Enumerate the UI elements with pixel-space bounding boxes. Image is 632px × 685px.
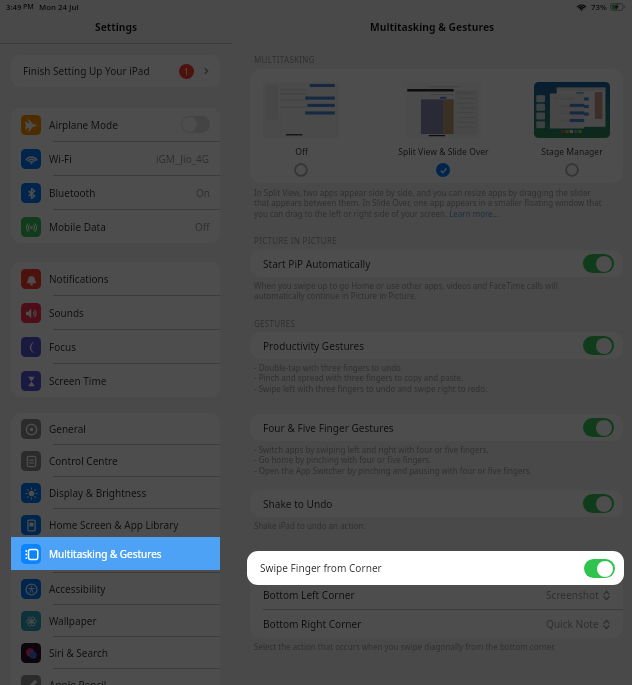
staticText: Control Centre — [49, 454, 118, 468]
staticText: Stage Manager — [541, 146, 603, 158]
staticText: Sounds — [49, 306, 84, 320]
staticText: 1 — [184, 66, 189, 77]
staticText: MULTITASKING — [254, 54, 315, 65]
button[interactable]: Focus — [11, 330, 220, 363]
button[interactable]: Home Screen & App Library — [11, 509, 220, 540]
button[interactable]: Split View & Slide Over — [380, 82, 506, 177]
button[interactable]: Display & Brightness — [11, 477, 220, 508]
staticText: Settings — [95, 20, 138, 34]
other: Wi-Fi — [576, 3, 587, 11]
staticText: Display & Brightness — [49, 486, 147, 500]
button[interactable]: Wi-Fi — [11, 142, 220, 175]
button[interactable]: Wallpaper — [11, 605, 220, 636]
button[interactable]: Shake to Undo — [250, 490, 623, 517]
staticText: - Double-tap with three fingers to undo.… — [254, 362, 488, 395]
button[interactable] — [583, 494, 614, 513]
button[interactable]: Airplane Mode — [11, 108, 220, 141]
button[interactable] — [583, 418, 614, 437]
staticText: Shake to Undo — [263, 497, 333, 511]
button[interactable] — [583, 556, 614, 575]
staticText: Multitasking & Gestures — [49, 547, 162, 561]
staticText: PM — [23, 2, 34, 12]
button[interactable]: Mobile Data — [11, 210, 220, 243]
staticText: Swipe Finger from Corner — [260, 561, 382, 575]
button[interactable]: Productivity Gestures — [250, 332, 623, 359]
button[interactable] — [583, 336, 614, 355]
staticText: Mobile Data — [49, 220, 106, 234]
staticText: - Switch apps by swiping left and right … — [254, 444, 532, 477]
button[interactable]: Multitasking & Gestures — [11, 537, 220, 570]
staticText: Shake iPad to undo an action. — [254, 520, 366, 531]
button[interactable]: Sounds — [11, 296, 220, 329]
staticText: Screenshot — [546, 588, 599, 602]
staticText: PICTURE IN PICTURE — [254, 235, 338, 246]
staticText: Siri & Search — [49, 646, 108, 660]
staticText: Select the action that occurs when you s… — [254, 641, 556, 652]
button[interactable]: Bottom Right Corner — [250, 610, 623, 638]
button[interactable]: Start PiP Automatically — [250, 250, 623, 277]
button[interactable]: Apple Pencil — [11, 669, 220, 685]
staticText: Off — [195, 220, 210, 234]
staticText: Wallpaper — [49, 614, 97, 628]
staticText: Four & Five Finger Gestures — [263, 421, 394, 435]
staticText: In Split View, two apps appear side by s… — [254, 187, 608, 220]
staticText: Finish Setting Up Your iPad — [23, 64, 150, 78]
staticText: Swipe Finger from Corner — [263, 559, 385, 573]
staticText: Productivity Gestures — [263, 339, 365, 353]
button[interactable]: Accessibility — [11, 573, 220, 604]
staticText: Bluetooth — [49, 186, 96, 200]
button[interactable]: Bottom Left Corner — [250, 581, 623, 609]
button[interactable]: Four & Five Finger Gestures — [250, 414, 623, 441]
staticText: General — [49, 422, 86, 436]
other: Battery 73% charging — [610, 3, 626, 11]
button[interactable]: Multitasking & Gestures — [11, 541, 220, 572]
button[interactable]: Screen Time — [11, 364, 220, 397]
staticText: When you swipe up to go Home or use othe… — [254, 280, 608, 302]
staticText: Airplane Mode — [49, 118, 118, 132]
button[interactable]: Bluetooth — [11, 176, 220, 209]
button[interactable] — [583, 254, 614, 273]
button[interactable]: Control Centre — [11, 445, 220, 476]
staticText: 73% — [591, 2, 607, 13]
button[interactable]: Swipe Finger from Corner — [247, 551, 624, 585]
staticText: Quick Note — [546, 617, 599, 631]
button[interactable]: Stage Manager — [517, 82, 623, 177]
button[interactable] — [584, 559, 615, 578]
staticText: 3:49 — [6, 2, 22, 13]
staticText: Notifications — [49, 272, 109, 286]
button[interactable]: General — [11, 413, 220, 444]
staticText: Multitasking & Gestures — [49, 550, 162, 564]
button[interactable]: Notifications — [11, 262, 220, 295]
staticText: Home Screen & App Library — [49, 518, 179, 532]
button[interactable]: Off — [256, 82, 346, 177]
staticText: Wi-Fi — [49, 152, 72, 166]
staticText: On — [196, 186, 210, 200]
button[interactable]: Siri & Search — [11, 637, 220, 668]
staticText: Focus — [49, 340, 77, 354]
button[interactable] — [181, 116, 210, 133]
staticText: Mon 24 Jul — [39, 2, 79, 13]
button[interactable]: Finish Setting Up Your iPad — [11, 55, 220, 87]
staticText: Bottom Right Corner — [263, 617, 362, 631]
staticText: Off — [295, 146, 308, 158]
button[interactable]: Swipe Finger from Corner — [250, 551, 623, 580]
staticText: Split View & Slide Over — [398, 146, 489, 158]
staticText: Apple Pencil — [49, 678, 107, 685]
staticText: Multitasking & Gestures — [370, 20, 495, 34]
staticText: Start PiP Automatically — [263, 257, 371, 271]
staticText: Accessibility — [49, 582, 106, 596]
staticText: Bottom Left Corner — [263, 588, 355, 602]
staticText: iGM_Jio_4G — [156, 152, 210, 166]
staticText: GESTURES — [254, 318, 296, 329]
staticText: Screen Time — [49, 374, 107, 388]
